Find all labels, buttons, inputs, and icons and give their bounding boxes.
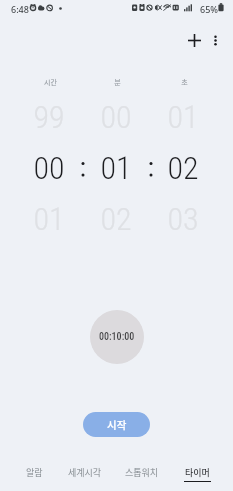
- staticText: 65%: [200, 3, 218, 15]
- staticText: 02: [167, 149, 199, 187]
- staticText: 타이머: [185, 466, 210, 479]
- staticText: 스톱워치: [125, 466, 159, 479]
- staticText: 99: [33, 98, 65, 136]
- staticText: 03: [167, 200, 199, 238]
- staticText: 01: [167, 98, 199, 136]
- staticText: 01: [33, 200, 65, 238]
- button[interactable]: 알람: [6, 466, 62, 491]
- button[interactable]: Add timer: [182, 28, 207, 53]
- staticText: 분: [114, 77, 121, 87]
- staticText: 00: [33, 149, 65, 187]
- staticText: 알람: [26, 466, 43, 479]
- button[interactable]: 타이머: [169, 466, 225, 491]
- button[interactable]: 스톱워치: [114, 466, 170, 491]
- button[interactable]: 세계시각: [57, 466, 113, 491]
- staticText: 00:10:00: [99, 331, 135, 343]
- button[interactable]: 00:10:00: [90, 310, 144, 364]
- staticText: 6:48: [11, 3, 29, 15]
- staticText: 초: [181, 77, 188, 87]
- staticText: 00: [100, 98, 132, 136]
- button[interactable]: More options: [203, 28, 228, 53]
- button[interactable]: 시작: [83, 412, 150, 437]
- staticText: 02: [100, 200, 132, 238]
- staticText: 01: [100, 149, 132, 187]
- staticText: 시간: [44, 77, 57, 87]
- staticText: 시작: [107, 417, 127, 432]
- staticText: 세계시각: [68, 466, 102, 479]
